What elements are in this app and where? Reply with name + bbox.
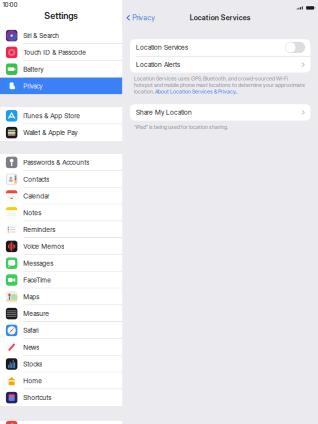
staticText: Settings [44,10,78,21]
staticText: Wallet & Apple Pay [23,129,77,137]
staticText: Calendar [23,192,49,200]
staticText: Measure [23,310,49,318]
staticText: Voice Memos [23,242,64,250]
staticText: Shortcuts [23,394,51,402]
button[interactable]: Contacts [0,171,122,188]
staticText: Privacy [132,13,155,22]
button[interactable]: Notes [0,204,122,221]
button[interactable]: Measure [0,305,122,322]
button[interactable]: Maps [0,288,122,305]
staticText: Reminders [23,226,55,234]
staticText: Passwords & Accounts [23,158,89,166]
button[interactable]: Messages [0,255,122,272]
button[interactable]: Shortcuts [0,389,122,406]
staticText: Maps [23,293,39,301]
staticText: Stocks [23,360,42,368]
button[interactable]: Touch ID & Passcode [0,44,122,61]
button[interactable]: Stocks [0,356,122,372]
staticText: 10:00 [3,1,18,8]
button[interactable]: Home [0,372,122,389]
staticText: Location Services uses GPS, Bluetooth, a… [134,75,305,95]
staticText: Privacy [23,82,42,90]
staticText: FaceTime [23,276,51,284]
button[interactable]: Share My Location [130,104,310,121]
button[interactable]: FaceTime [0,272,122,288]
staticText: Location Services [136,43,188,51]
staticText: Notes [23,209,41,217]
staticText: News [23,343,39,351]
staticText: Battery [23,65,43,73]
staticText: “iPad” is being used for location sharin… [134,124,228,130]
staticText: Messages [23,259,53,267]
button[interactable]: News [0,339,122,356]
button[interactable]: Reminders [0,221,122,238]
button[interactable]: Calendar [0,188,122,204]
button[interactable]: Voice Memos [0,238,122,255]
staticText: Location Alerts [136,61,180,69]
button[interactable]: Privacy [0,78,122,94]
button[interactable]: Safari [0,322,122,339]
button[interactable]: Passwords & Accounts [0,154,122,171]
staticText: Home [23,377,42,385]
button[interactable]: Siri & Search [0,27,122,44]
staticText: iTunes & App Store [23,112,80,120]
button[interactable]: Privacy [122,11,158,25]
staticText: Safari [23,326,38,334]
button[interactable]: Wallet & Apple Pay [0,124,122,141]
staticText: Touch ID & Passcode [23,48,86,56]
button[interactable]: Location Alerts [130,56,310,73]
staticText: Location Services [190,13,251,22]
button[interactable]: Location Services [130,39,310,56]
button[interactable]: iTunes & App Store [0,107,122,124]
staticText: Share My Location [136,108,192,116]
button[interactable]: Battery [0,61,122,78]
staticText: Siri & Search [23,32,59,40]
staticText: Contacts [23,175,49,183]
